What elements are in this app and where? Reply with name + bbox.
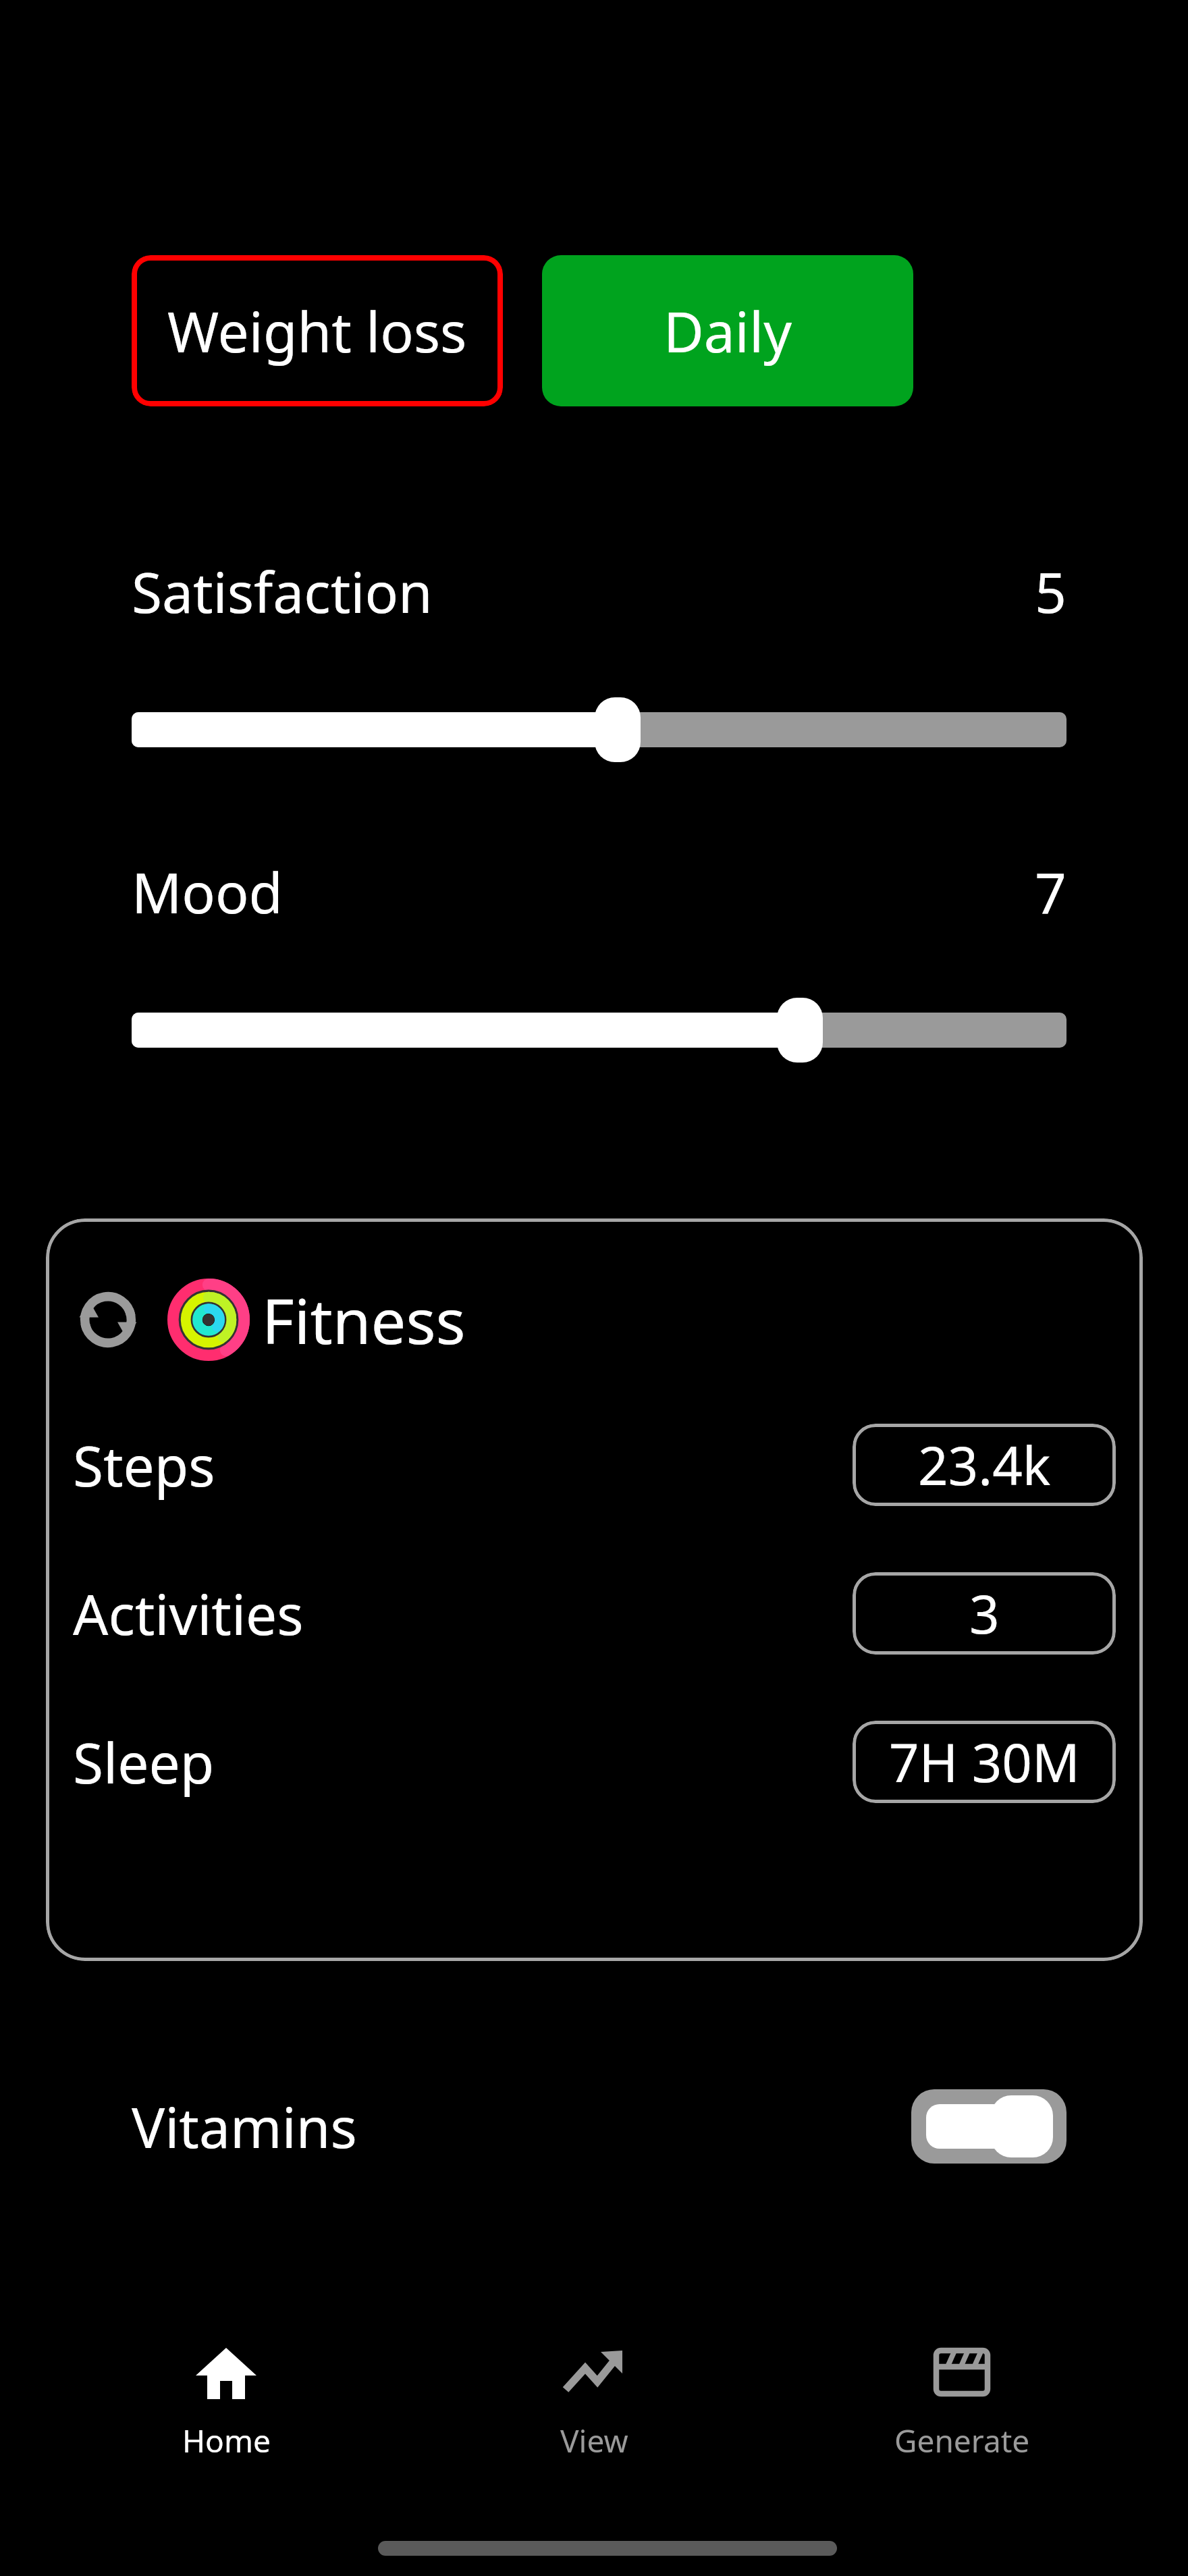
staticText: Weight loss [167, 293, 467, 369]
staticText: Steps [73, 1427, 215, 1503]
button[interactable]: Activities [73, 1563, 1116, 1664]
button[interactable]: Generate [820, 2322, 1104, 2491]
button[interactable]: Vitamins toggle [911, 2089, 1066, 2164]
button[interactable] [132, 998, 1066, 1063]
staticText: View [560, 2419, 628, 2462]
button[interactable]: Vitamins [132, 2066, 1066, 2187]
other: Home [192, 2338, 260, 2406]
staticText: 23.4k [918, 1429, 1051, 1501]
button[interactable]: Sync [46, 1218, 1143, 1961]
staticText: Vitamins [132, 2089, 357, 2164]
button[interactable]: Home [84, 2322, 368, 2491]
other: Sync [73, 1285, 143, 1355]
staticText: Home [182, 2419, 271, 2462]
staticText: 3 [969, 1578, 1000, 1649]
staticText: Daily [664, 293, 792, 369]
staticText: Fitness [262, 1278, 466, 1362]
staticText: 7H 30M [889, 1726, 1080, 1798]
staticText: Satisfaction [132, 554, 433, 629]
button[interactable]: Daily [542, 255, 913, 406]
button[interactable]: Weight loss [132, 255, 503, 406]
other: Generate [928, 2338, 996, 2406]
staticText: Generate [894, 2419, 1030, 2462]
button[interactable]: Steps [73, 1414, 1116, 1515]
button[interactable]: Sleep [73, 1711, 1116, 1813]
staticText: Mood [132, 854, 283, 930]
staticText: Sleep [73, 1724, 215, 1800]
staticText: Activities [73, 1576, 304, 1651]
staticText: 7 [1035, 854, 1066, 930]
other: View [560, 2338, 628, 2406]
staticText: 5 [1035, 554, 1066, 629]
button[interactable]: View [452, 2322, 736, 2491]
button[interactable] [132, 697, 1066, 762]
